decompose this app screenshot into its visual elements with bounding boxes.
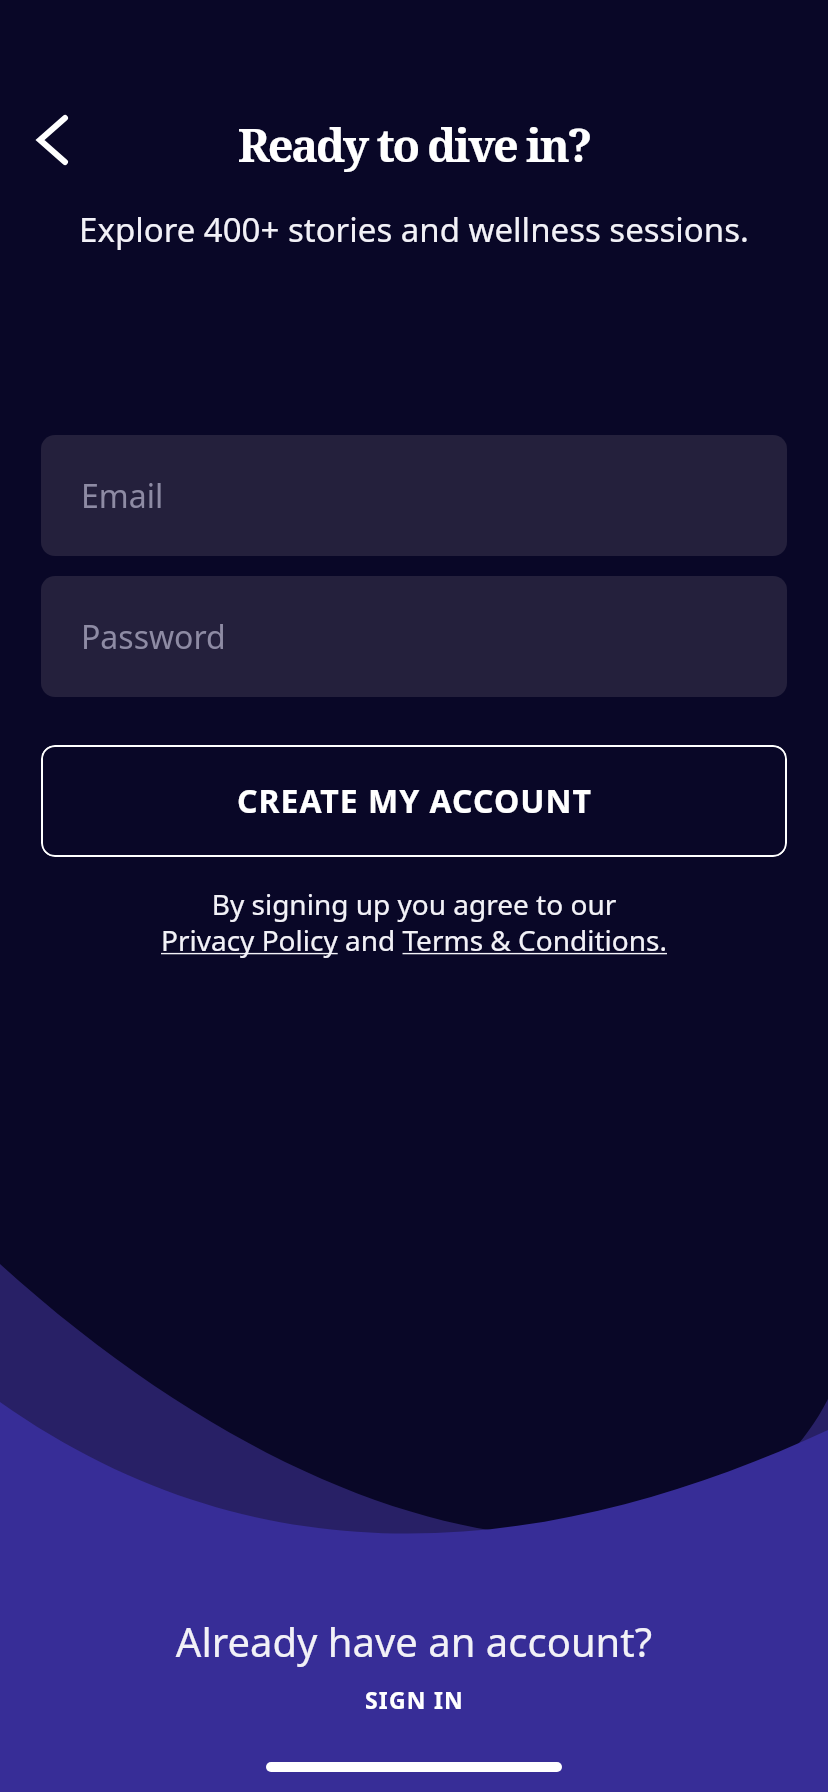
staticText: Already have an account? [0, 1614, 828, 1668]
staticText: Password [81, 615, 226, 659]
staticText: SIGN IN [365, 1684, 464, 1715]
button[interactable] [26, 112, 82, 168]
staticText: Ready to dive in? [0, 114, 828, 175]
staticText: Privacy Policy and Terms & Conditions. [0, 921, 828, 959]
staticText: Explore 400+ stories and wellness sessio… [0, 207, 828, 252]
button[interactable]: CREATE MY ACCOUNT [41, 745, 787, 857]
staticText: Email [81, 474, 164, 518]
button[interactable]: Privacy Policy and Terms & Conditions. [0, 921, 828, 959]
staticText: CREATE MY ACCOUNT [237, 779, 592, 823]
staticText: By signing up you agree to our [0, 885, 828, 923]
button[interactable]: SIGN IN [365, 1684, 464, 1715]
button[interactable]: Email [41, 435, 787, 556]
button[interactable]: Password [41, 576, 787, 697]
